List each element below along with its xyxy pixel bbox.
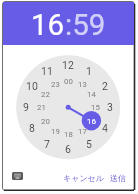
staticText: 16	[87, 117, 96, 126]
staticText: 23	[51, 80, 60, 89]
staticText: 5	[86, 138, 92, 150]
button[interactable]	[11, 170, 25, 182]
staticText: 17	[78, 127, 87, 136]
button[interactable]: キャンセル	[62, 170, 104, 186]
staticText: 21	[37, 103, 46, 112]
staticText: 22	[41, 90, 50, 99]
button[interactable]: 送信	[108, 170, 128, 186]
staticText: 11	[41, 65, 53, 77]
staticText: 18	[64, 130, 73, 139]
staticText: 13	[78, 80, 87, 89]
staticText: 送信	[110, 173, 126, 183]
staticText: 16	[31, 8, 65, 43]
staticText: :59	[65, 8, 106, 43]
staticText: 2	[102, 80, 108, 92]
staticText: 20	[41, 117, 50, 126]
staticText: 1	[86, 65, 92, 77]
staticText: 4	[102, 122, 108, 134]
staticText: 14	[87, 90, 96, 99]
staticText: キャンセル	[63, 173, 104, 183]
staticText: 19	[51, 127, 60, 136]
staticText: 12	[62, 59, 74, 71]
staticText: 10	[26, 80, 38, 92]
staticText: 00	[64, 77, 73, 86]
staticText: 9	[23, 101, 29, 113]
staticText: 15	[91, 103, 100, 112]
staticText: 6	[65, 143, 71, 155]
staticText: 8	[29, 122, 35, 134]
button[interactable]: 16	[3, 2, 134, 45]
staticText: 3	[107, 101, 113, 113]
staticText: 7	[44, 138, 50, 150]
